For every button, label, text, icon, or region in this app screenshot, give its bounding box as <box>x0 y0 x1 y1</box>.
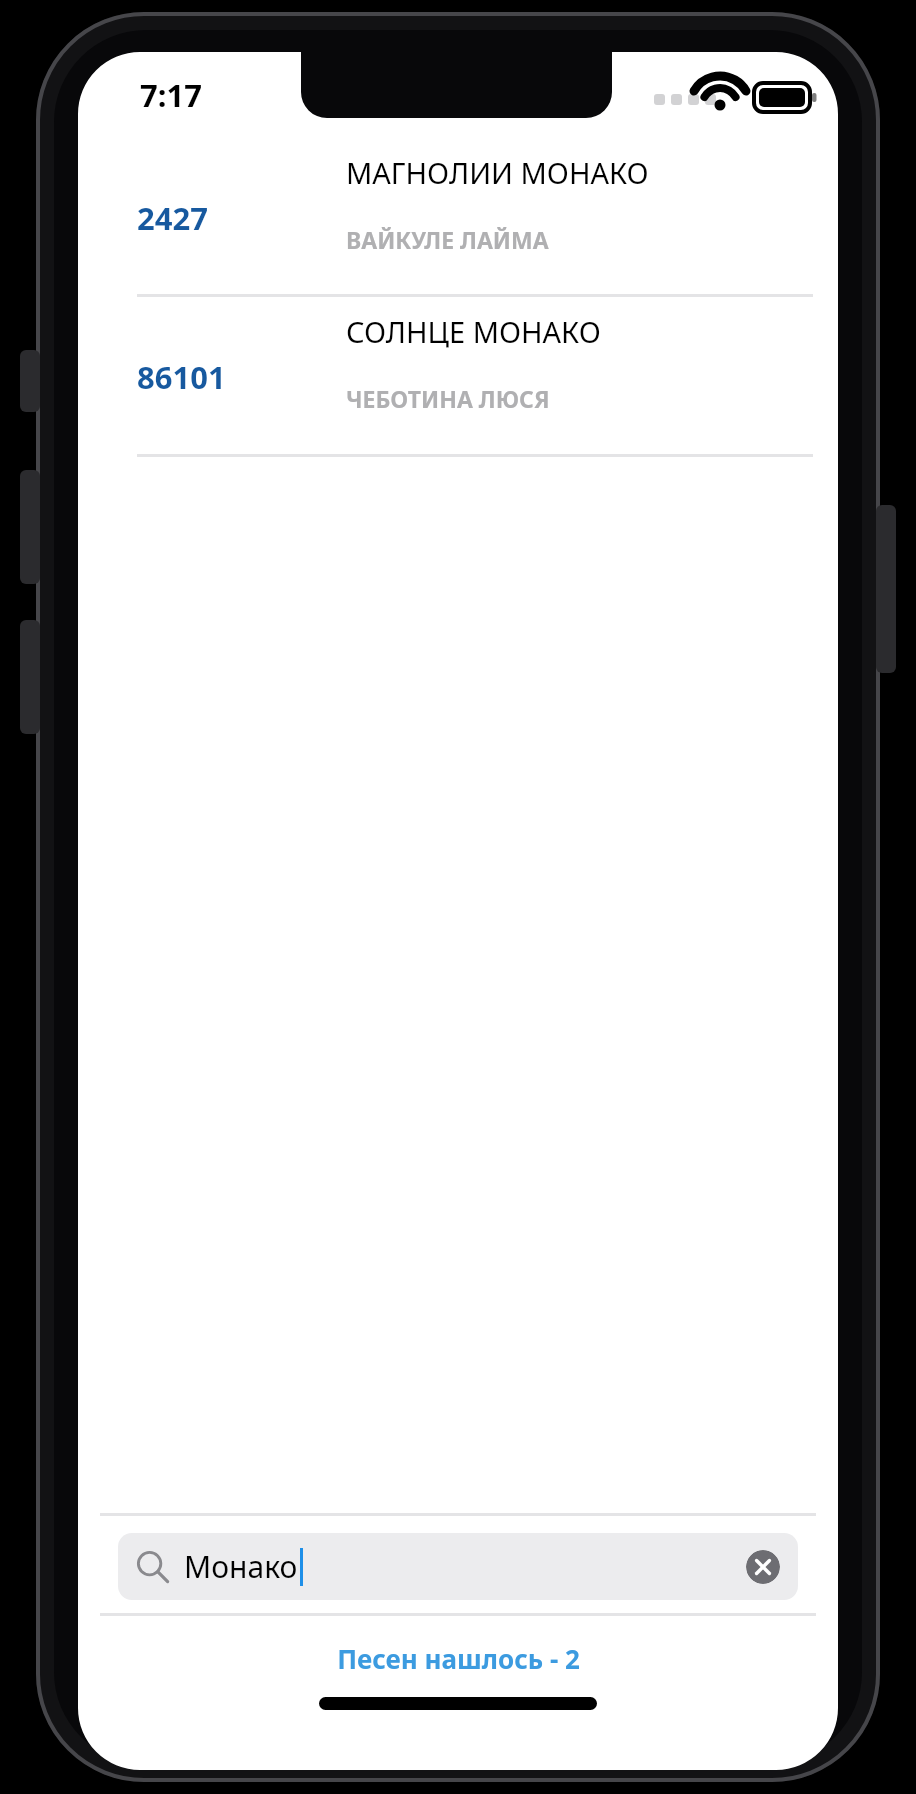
staticText: 86101 <box>137 356 226 398</box>
button[interactable] <box>0 297 916 454</box>
button[interactable] <box>0 122 916 294</box>
button[interactable]: Монако <box>118 1533 798 1600</box>
button[interactable]: Песен нашлось - 2 <box>0 1634 916 1682</box>
staticText: СОЛНЦЕ МОНАКО <box>346 312 601 351</box>
staticText: Монако <box>184 1546 298 1587</box>
staticText: МАГНОЛИИ МОНАКО <box>346 153 649 192</box>
staticText: 7:17 <box>140 74 202 116</box>
staticText: 2427 <box>137 197 208 239</box>
staticText: ЧЕБОТИНА ЛЮСЯ <box>346 383 550 414</box>
staticText: ВАЙКУЛЕ ЛАЙМА <box>346 224 549 255</box>
staticText: Песен нашлось - 2 <box>337 1641 580 1676</box>
button[interactable]: Очистить <box>746 1550 780 1584</box>
